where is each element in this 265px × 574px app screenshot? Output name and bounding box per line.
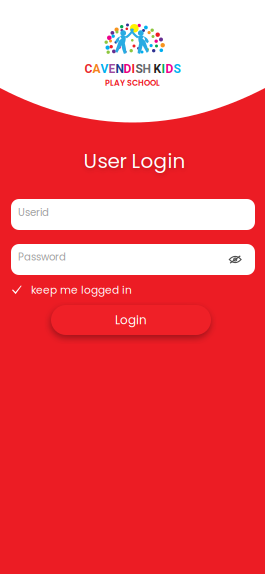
staticText: I (131, 62, 135, 76)
staticText: E (108, 62, 115, 76)
staticText: V (100, 62, 108, 76)
staticText: User Login (83, 147, 185, 175)
staticText: D (165, 62, 173, 76)
staticText: Login (115, 312, 147, 328)
staticText: K (153, 62, 161, 76)
staticText: Password (18, 250, 66, 264)
staticText: keep me logged in (31, 282, 132, 297)
staticText: N (115, 62, 123, 76)
staticText: A (92, 62, 100, 76)
staticText: I (161, 62, 165, 76)
button[interactable]: keep me logged in (0, 281, 150, 299)
staticText: D (123, 62, 131, 76)
staticText: C (84, 62, 92, 76)
staticText (150, 62, 153, 76)
staticText: Userid (18, 205, 49, 220)
staticText: H (142, 62, 150, 76)
staticText: PLAY SCHOOL (105, 77, 160, 89)
staticText: S (173, 62, 180, 76)
button[interactable]: Login (51, 305, 211, 335)
staticText: S (135, 62, 142, 76)
